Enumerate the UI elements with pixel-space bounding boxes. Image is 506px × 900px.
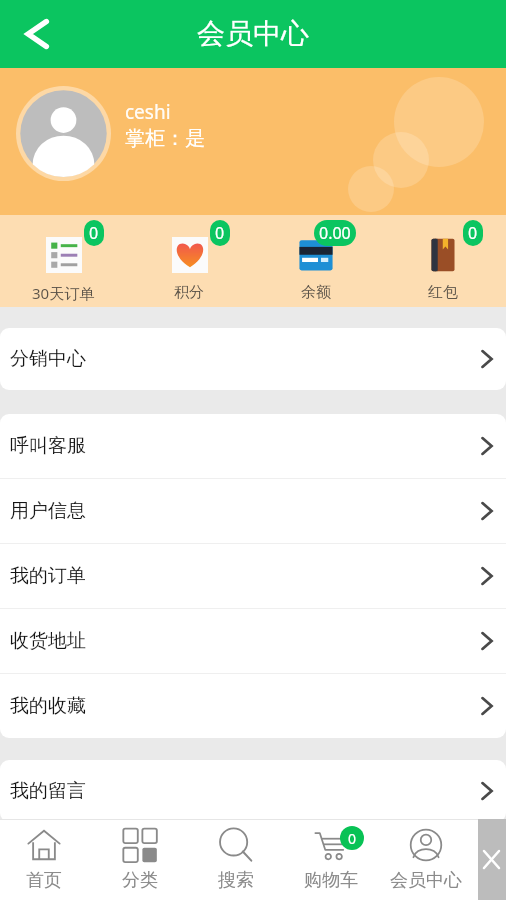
button[interactable]: 0 bbox=[126, 215, 252, 307]
staticText: 我的订单 bbox=[10, 564, 86, 588]
staticText: 我的留言 bbox=[10, 779, 86, 803]
button[interactable]: 收货地址 bbox=[0, 609, 506, 673]
staticText: 余额 bbox=[301, 283, 331, 302]
staticText: 掌柜：是 bbox=[125, 126, 205, 151]
staticText: 红包 bbox=[428, 283, 458, 302]
button[interactable]: 分销中心 bbox=[0, 328, 506, 390]
staticText: 收货地址 bbox=[10, 629, 86, 653]
button[interactable]: 用户信息 bbox=[0, 479, 506, 543]
button[interactable]: 0.00 bbox=[252, 215, 379, 307]
staticText: 购物车 bbox=[304, 869, 358, 892]
button[interactable]: 会员中心 bbox=[378, 819, 473, 900]
button[interactable]: 分类 bbox=[92, 819, 188, 900]
button[interactable]: 我的订单 bbox=[0, 544, 506, 608]
staticText: 我的收藏 bbox=[10, 694, 86, 718]
staticText: 呼叫客服 bbox=[10, 434, 86, 458]
button[interactable]: 呼叫客服 bbox=[0, 414, 506, 478]
staticText: 0.00 bbox=[319, 222, 351, 244]
staticText: 0 bbox=[468, 222, 478, 244]
staticText: 30天订单 bbox=[32, 283, 95, 303]
button[interactable]: 0 bbox=[0, 215, 126, 307]
button[interactable]: 我的收藏 bbox=[0, 674, 506, 738]
button[interactable]: 搜索 bbox=[188, 819, 283, 900]
staticText: 会员中心 bbox=[197, 16, 309, 51]
button[interactable]: 0 bbox=[283, 819, 378, 900]
staticText: 首页 bbox=[26, 869, 62, 892]
staticText: 分销中心 bbox=[10, 347, 86, 371]
staticText: 0 bbox=[215, 222, 225, 244]
button[interactable]: Back bbox=[12, 10, 60, 58]
staticText: 用户信息 bbox=[10, 499, 86, 523]
staticText: 0 bbox=[89, 222, 99, 244]
staticText: 分类 bbox=[122, 869, 158, 892]
button[interactable]: 0 bbox=[379, 215, 506, 307]
button[interactable]: Close bbox=[478, 819, 506, 900]
staticText: 0 bbox=[348, 829, 357, 848]
staticText: 搜索 bbox=[218, 869, 254, 892]
staticText: ceshi bbox=[125, 99, 171, 125]
staticText: 会员中心 bbox=[390, 869, 462, 892]
button[interactable]: 首页 bbox=[0, 819, 92, 900]
button[interactable]: 我的留言 bbox=[0, 760, 506, 822]
staticText: 积分 bbox=[174, 283, 204, 302]
